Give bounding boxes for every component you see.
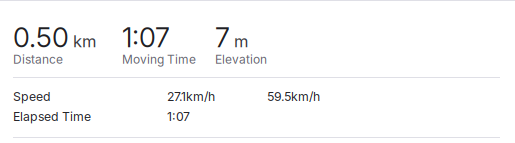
staticText: Moving Time [122,52,196,66]
staticText: Distance [13,52,63,66]
button[interactable]: 1:07 [122,21,215,67]
staticText: 7 [215,21,230,54]
staticText: 1:07 [167,109,190,124]
staticText: Speed [13,89,51,104]
button[interactable]: Speed [13,89,500,109]
button[interactable]: Elapsed Time [13,109,500,129]
staticText: Elevation [215,52,267,66]
staticText: 27.1km/h [167,89,215,104]
staticText: 0.50 [13,21,69,54]
staticText: Elapsed Time [13,109,91,124]
staticText: m [234,31,248,51]
button[interactable]: 7 [215,21,305,67]
staticText: km [73,31,96,51]
staticText: 1:07 [122,21,170,54]
staticText: 59.5km/h [267,89,320,104]
button[interactable]: 0.50 [13,21,122,67]
